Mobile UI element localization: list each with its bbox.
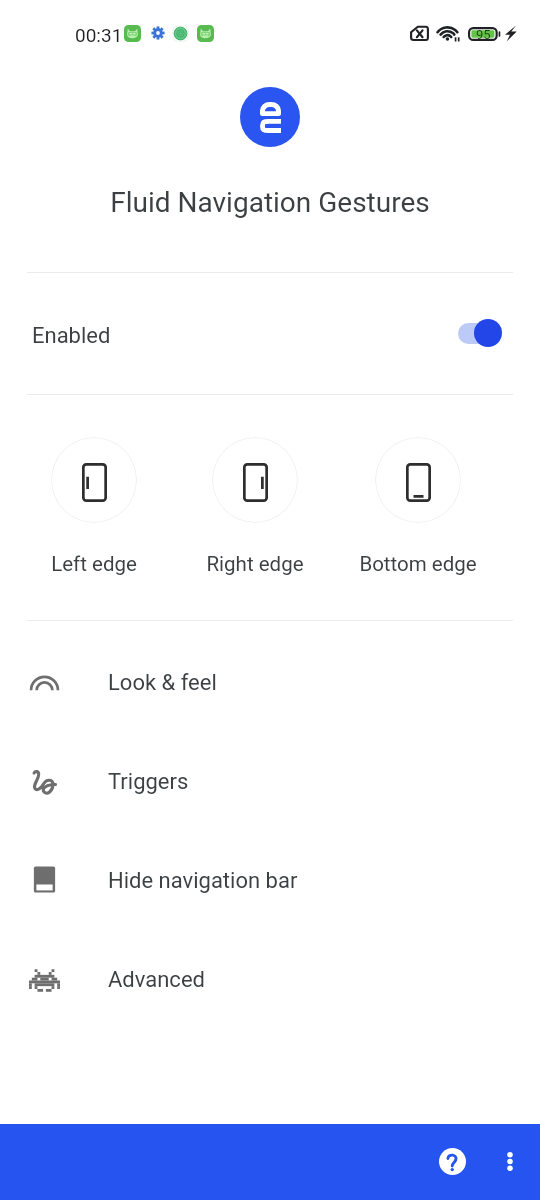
button[interactable]: Triggers — [0, 732, 540, 831]
button[interactable]: Hide navigation bar — [0, 831, 540, 930]
staticText: 00:31 — [75, 24, 123, 46]
button[interactable]: Enabled — [0, 275, 540, 396]
staticText: Look & feel — [108, 670, 217, 696]
button[interactable]: Left edge — [19, 437, 169, 576]
staticText: Advanced — [108, 967, 205, 993]
staticText: Triggers — [108, 769, 189, 795]
button[interactable]: Right edge — [180, 437, 330, 576]
staticText: 95 — [476, 27, 491, 41]
staticText: Right edge — [206, 552, 304, 576]
button[interactable]: App icon — [240, 87, 300, 147]
staticText: Enabled — [32, 323, 111, 349]
button[interactable]: More options — [486, 1137, 534, 1185]
staticText: Hide navigation bar — [108, 868, 298, 894]
button[interactable]: Advanced — [0, 930, 540, 1029]
staticText: Fluid Navigation Gestures — [110, 186, 430, 219]
button[interactable]: Help — [428, 1137, 476, 1185]
staticText: Left edge — [51, 552, 137, 576]
button[interactable]: Bottom edge — [343, 437, 493, 576]
staticText: Bottom edge — [359, 552, 477, 576]
button[interactable]: Look & feel — [0, 633, 540, 732]
